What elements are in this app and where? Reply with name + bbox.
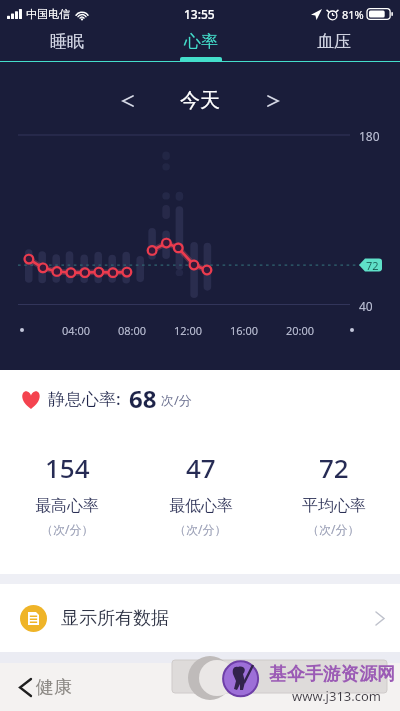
staticText: 40 (359, 298, 373, 314)
staticText: 13:55 (184, 6, 215, 22)
staticText: 20:00 (286, 323, 315, 337)
staticText: （次/分） (174, 521, 227, 537)
staticText: 72 (366, 258, 379, 273)
staticText: 心率 (184, 31, 218, 52)
staticText: 81% (342, 7, 364, 22)
button[interactable]: 健康 (0, 663, 400, 711)
staticText: 12:00 (174, 323, 203, 337)
staticText: 显示所有数据 (61, 607, 169, 630)
staticText: 血压 (317, 31, 351, 52)
staticText: 今天 (180, 88, 220, 113)
button[interactable]: Next day (256, 84, 290, 118)
staticText: 最低心率 (169, 496, 233, 516)
staticText: （次/分） (307, 521, 360, 537)
staticText: 16:00 (230, 323, 259, 337)
staticText: 中国电信 (26, 7, 70, 21)
staticText: 180 (359, 128, 380, 144)
staticText: 154 (45, 450, 90, 485)
staticText: www.j313.com (292, 687, 382, 705)
button[interactable]: Previous day (111, 84, 145, 118)
staticText: （次/分） (41, 521, 94, 537)
staticText: 47 (186, 450, 216, 485)
button[interactable]: 睡眠 (0, 28, 134, 62)
staticText: 平均心率 (302, 496, 366, 516)
staticText: 健康 (36, 676, 72, 699)
button[interactable]: 心率 (134, 28, 267, 62)
staticText: 68 (129, 382, 157, 415)
staticText: 睡眠 (50, 31, 84, 52)
button[interactable]: 血压 (267, 28, 400, 62)
staticText: 次/分 (161, 391, 192, 409)
staticText: 静息心率: (48, 387, 121, 410)
staticText: 72 (319, 450, 349, 485)
button[interactable]: 显示所有数据 (0, 584, 400, 652)
staticText: 04:00 (62, 323, 91, 337)
staticText: 最高心率 (35, 496, 99, 516)
staticText: 基伞手游资源网 (269, 663, 395, 686)
staticText: 08:00 (118, 323, 147, 337)
